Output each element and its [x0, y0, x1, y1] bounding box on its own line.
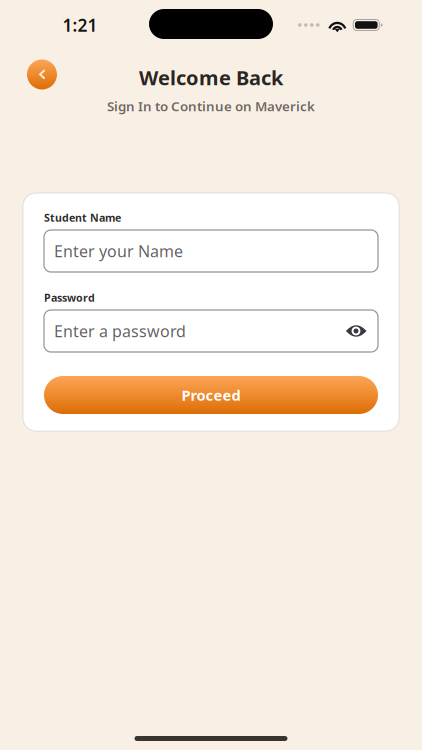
staticText: 1:21 [62, 13, 97, 36]
staticText: Sign In to Continue on Maverick [107, 97, 315, 115]
button[interactable]: Enter your Name [44, 230, 378, 272]
button[interactable]: Proceed [44, 376, 378, 414]
staticText: Enter your Name [54, 240, 183, 262]
staticText: Proceed [181, 385, 240, 405]
button[interactable]: Back [25, 57, 59, 91]
button[interactable]: Enter a password [44, 310, 378, 352]
staticText: Welcome Back [139, 64, 283, 91]
staticText: Student Name [44, 210, 121, 225]
button[interactable]: Show password [342, 318, 370, 344]
staticText: Enter a password [54, 320, 186, 342]
staticText: Password [44, 290, 95, 305]
